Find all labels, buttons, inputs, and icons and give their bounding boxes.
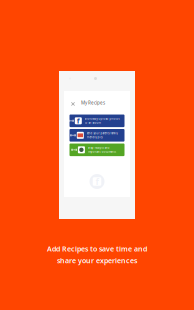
staticText: My Recipes [81, 100, 105, 106]
staticText: important documents [88, 150, 116, 154]
staticText: Snap receipts and [88, 146, 110, 149]
button[interactable]: f [69, 114, 124, 127]
staticText: Effortlessly upload photos [85, 117, 120, 120]
staticText: to an album [85, 121, 101, 124]
button[interactable]: Close [68, 98, 77, 108]
staticText: f [95, 175, 98, 187]
staticText: Send your parents family [87, 131, 118, 135]
staticText: Add Recipes to save time and [47, 244, 147, 254]
staticText: friendly pics [87, 136, 103, 139]
staticText: share your experiences [57, 256, 137, 265]
button[interactable]: Snap receipts and [69, 143, 124, 156]
staticText: f [77, 116, 80, 126]
button[interactable]: Send your parents family [69, 129, 124, 142]
